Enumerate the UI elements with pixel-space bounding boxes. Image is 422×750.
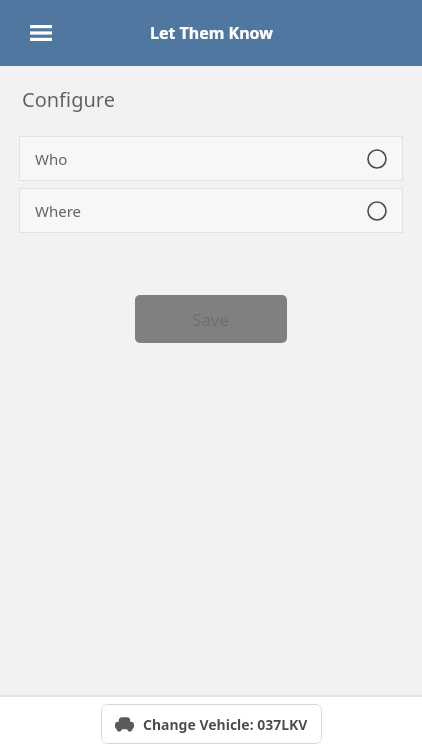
staticText: Let Them Know [150, 22, 273, 44]
staticText: Configure [22, 86, 115, 113]
button[interactable]: Save [135, 295, 287, 343]
button[interactable]: Where [19, 188, 403, 233]
staticText: Who [35, 149, 367, 169]
staticText: Change Vehicle: 037LKV [143, 715, 308, 734]
button[interactable]: Change Vehicle: 037LKV [101, 704, 322, 744]
staticText: Where [35, 201, 367, 221]
button[interactable]: Who [19, 136, 403, 181]
button[interactable]: Open navigation menu [18, 10, 64, 56]
staticText: Save [192, 308, 230, 331]
